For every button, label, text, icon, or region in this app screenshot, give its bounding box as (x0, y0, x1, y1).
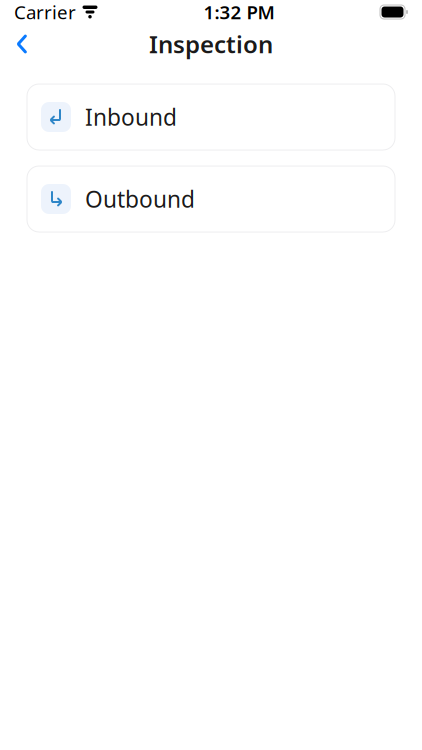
button[interactable]: Outbound (27, 166, 395, 232)
staticText: Outbound (85, 184, 195, 214)
staticText: Inbound (85, 102, 177, 132)
button[interactable]: Back (0, 24, 44, 64)
button[interactable]: Inbound (27, 84, 395, 150)
staticText: 1:32 PM (203, 0, 274, 24)
staticText: Inspection (149, 28, 273, 60)
staticText: Carrier (14, 0, 76, 24)
